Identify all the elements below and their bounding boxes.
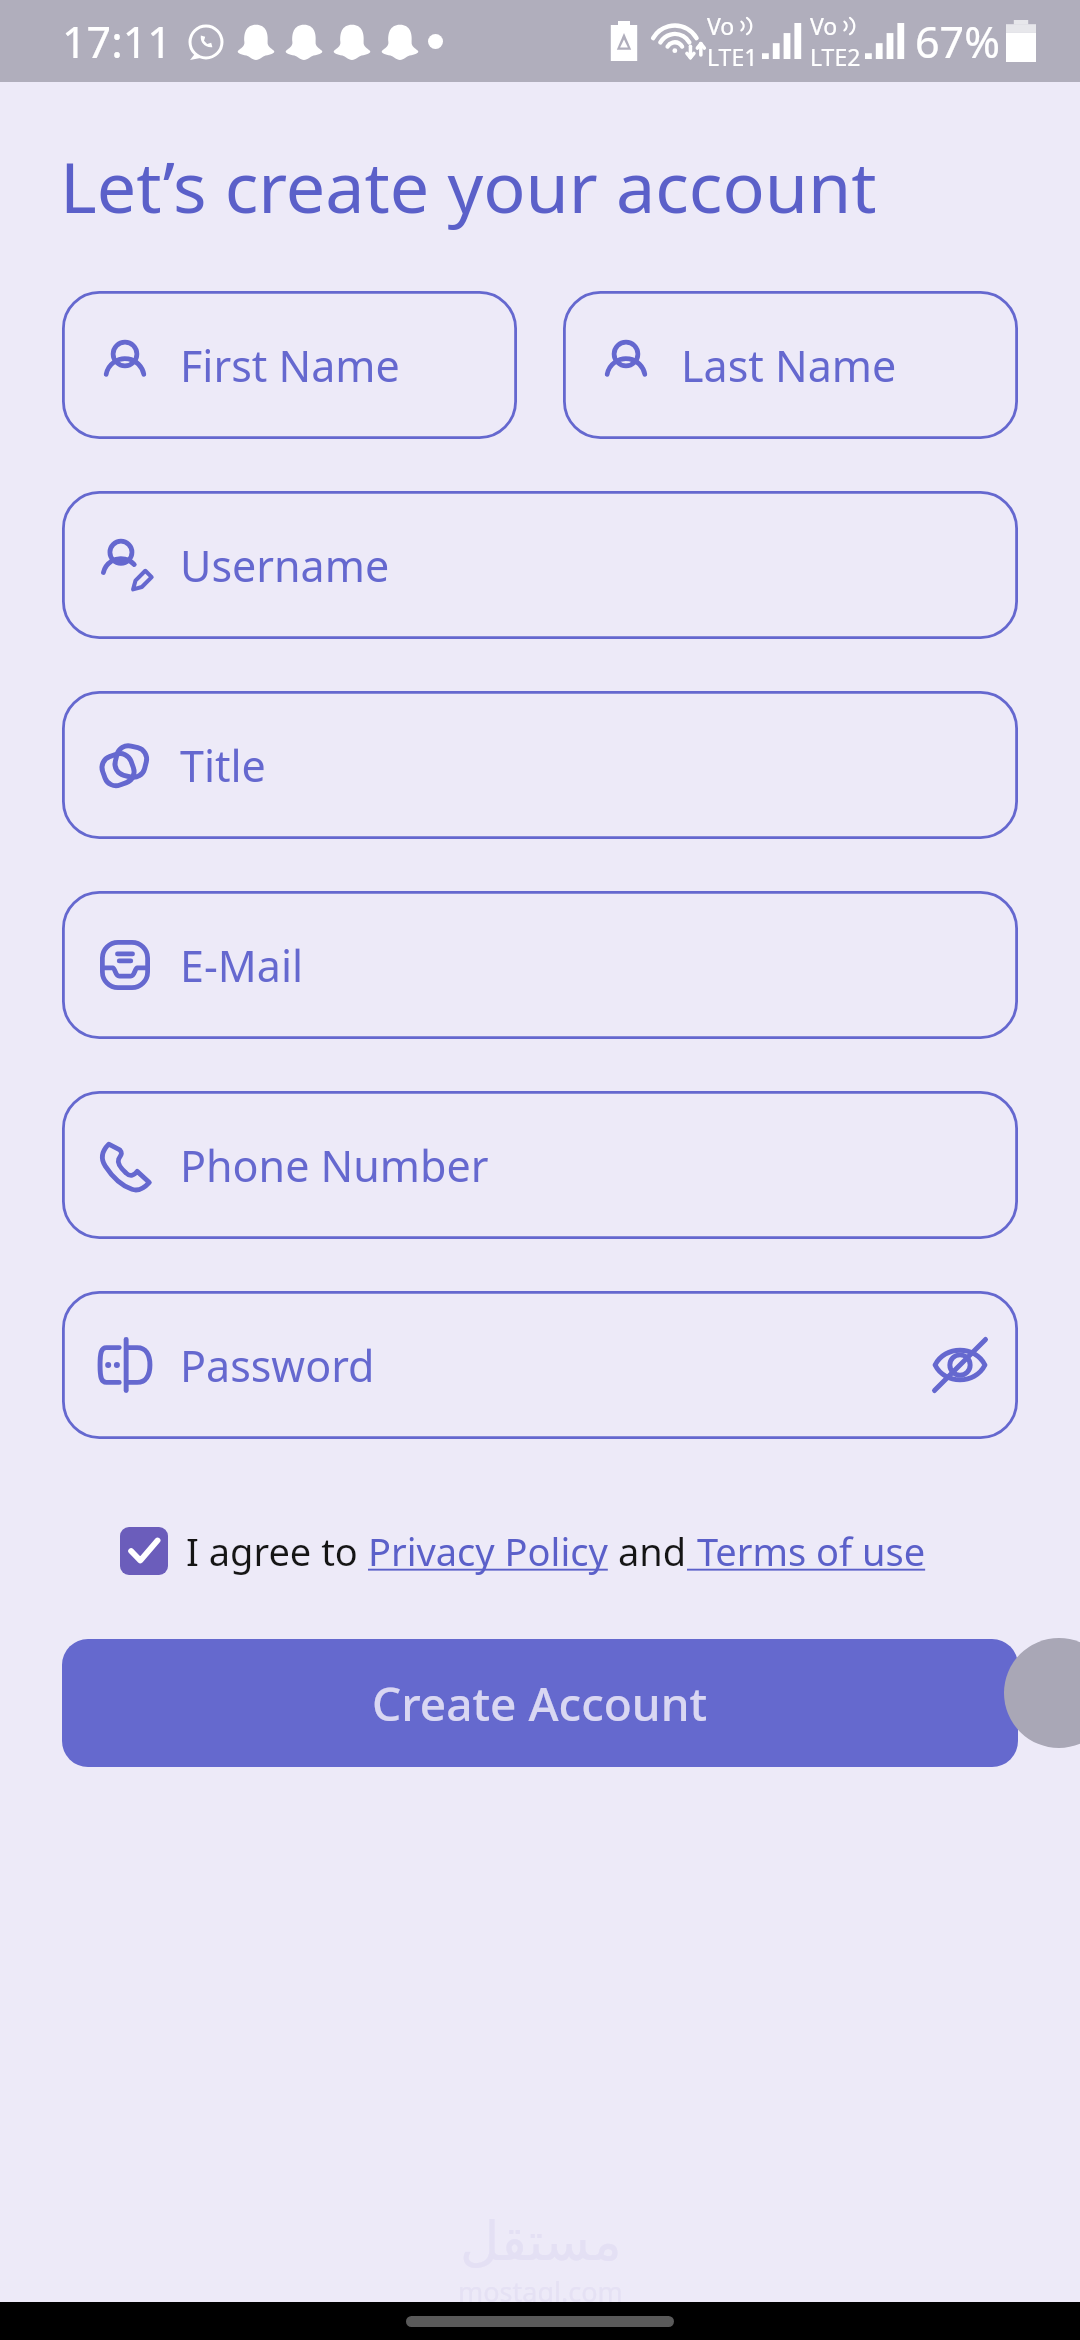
button[interactable]: Show password — [914, 1319, 1006, 1411]
staticText: E-Mail — [180, 936, 304, 995]
button[interactable]: Last Name — [563, 291, 1018, 439]
staticText: Vo — [707, 10, 735, 41]
staticText: Username — [180, 536, 390, 595]
staticText: mostaql.com — [458, 2273, 623, 2310]
staticText: Vo — [810, 10, 838, 41]
staticText: Last Name — [681, 336, 897, 395]
staticText: Terms of use — [687, 1525, 926, 1577]
staticText: Password — [180, 1336, 375, 1395]
staticText: Phone Number — [180, 1136, 489, 1195]
button[interactable]: Phone Number — [62, 1091, 1018, 1239]
button[interactable]: E-Mail — [62, 891, 1018, 1039]
staticText: LTE2 — [810, 41, 861, 72]
button[interactable]: First Name — [62, 291, 517, 439]
button[interactable]: Privacy Policy — [368, 1525, 608, 1577]
staticText: First Name — [180, 336, 400, 395]
staticText: LTE1 — [707, 41, 758, 72]
staticText: مستقل — [460, 2210, 622, 2273]
staticText: 17:11 — [62, 12, 172, 71]
button[interactable]: Terms of use — [687, 1525, 926, 1577]
button[interactable]: Username — [62, 491, 1018, 639]
staticText: Let’s create your account — [60, 138, 877, 233]
button[interactable]: I agree — [120, 1527, 168, 1575]
staticText: 67% — [915, 12, 1000, 71]
staticText: Create Account — [372, 1672, 708, 1735]
staticText: I agree to — [186, 1525, 368, 1577]
button[interactable]: Password — [62, 1291, 1018, 1439]
button[interactable]: Create Account — [62, 1639, 1018, 1767]
staticText: and — [608, 1525, 687, 1577]
button[interactable]: Title — [62, 691, 1018, 839]
staticText: Title — [180, 736, 266, 795]
staticText: Privacy Policy — [368, 1525, 608, 1577]
